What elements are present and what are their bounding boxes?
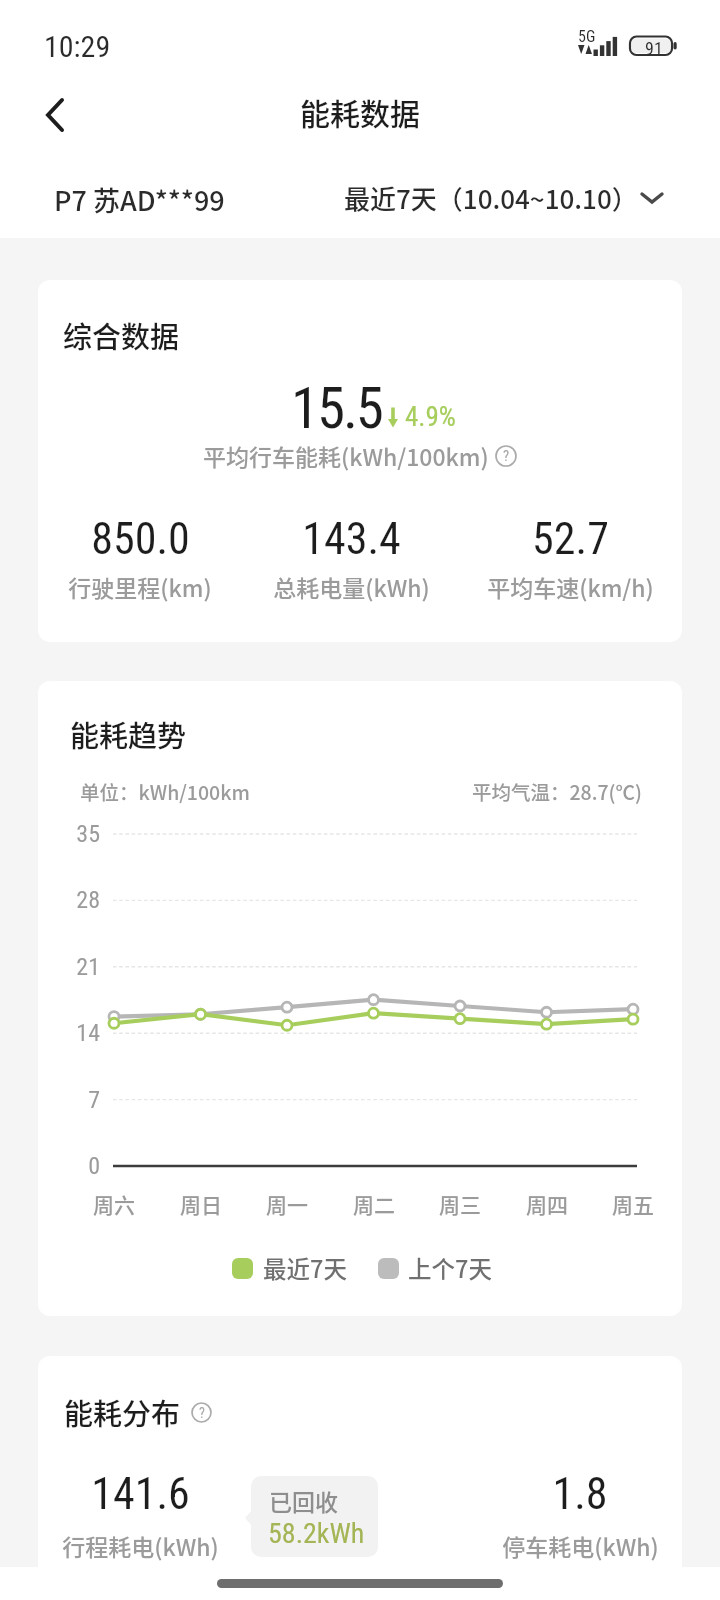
staticText: 平均气温：28.7(℃) [471,777,642,805]
staticText: 1.8 [552,1468,608,1520]
button[interactable]: 最近7天 [232,1251,347,1285]
staticText: 周二 [353,1189,395,1219]
staticText: 能耗分布 [64,1391,181,1433]
button[interactable]: 能耗分布 [38,1356,682,1586]
staticText: 周五 [612,1189,654,1219]
staticText: 58.2kWh [268,1517,365,1550]
button[interactable]: 最近7天（10.04~10.10） [344,179,664,217]
staticText: 10:29 [44,29,111,64]
staticText: 周日 [180,1189,222,1219]
staticText: 能耗趋势 [70,713,187,755]
staticText: 上个7天 [408,1251,492,1285]
staticText: 总耗电量(kWh) [273,570,430,603]
staticText: 21 [76,953,100,981]
button[interactable]: Back [22,86,78,142]
staticText: 周一 [266,1189,308,1219]
staticText: 平均车速(km/h) [487,570,654,603]
staticText: 最近7天 [263,1251,347,1285]
staticText: P7 苏AD***99 [54,180,225,219]
staticText: 行程耗电(kWh) [62,1529,219,1562]
staticText: 5G [578,27,596,46]
staticText: 0 [88,1152,100,1180]
staticText: 单位：kWh/100km [80,777,250,805]
staticText: 7 [88,1086,100,1114]
staticText: 28 [76,886,100,914]
staticText: ? [503,448,510,465]
staticText: 35 [76,820,100,848]
staticText: 15.5 [291,375,382,442]
staticText: 52.7 [532,513,609,565]
staticText: 143.4 [302,513,401,565]
staticText: 4.9% [405,401,456,433]
staticText: 综合数据 [63,314,180,356]
staticText: 91 [645,38,663,59]
button[interactable]: More info [495,445,517,467]
button[interactable]: 上个7天 [378,1251,492,1285]
staticText: 最近7天（10.04~10.10） [344,179,638,217]
staticText: 141.6 [91,1468,190,1520]
staticText: 能耗数据 [300,90,420,133]
button[interactable]: 能耗趋势 [38,681,682,1316]
button[interactable]: More info [191,1402,212,1423]
button[interactable]: 综合数据 [38,280,682,642]
staticText: 行驶里程(km) [68,570,212,603]
staticText: 14 [76,1019,100,1047]
staticText: 周六 [93,1189,135,1219]
staticText: ? [199,1405,205,1421]
staticText: 平均行车能耗(kWh/100km) [203,439,489,472]
staticText: 周四 [526,1189,568,1219]
staticText: 已回收 [269,1484,338,1517]
staticText: 停车耗电(kWh) [502,1529,659,1562]
staticText: 周三 [439,1189,481,1219]
staticText: 850.0 [91,513,190,565]
